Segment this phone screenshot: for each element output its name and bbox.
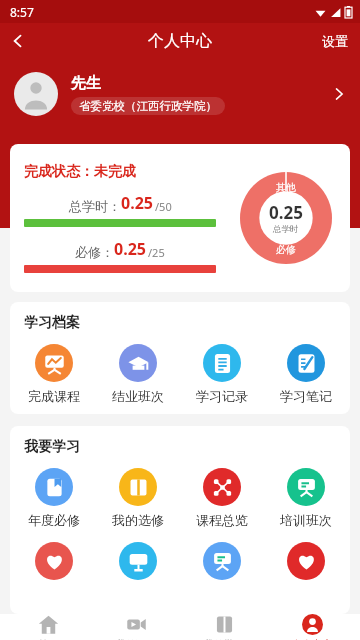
staticText: 设置 — [322, 33, 348, 49]
staticText: 我的学习 — [203, 638, 245, 640]
staticText: 年度必修 — [28, 512, 80, 528]
button[interactable] — [182, 542, 262, 604]
staticText: /50 — [155, 199, 172, 214]
button[interactable]: 课程总览 — [182, 468, 262, 528]
button[interactable]: 完成课程 — [14, 344, 94, 404]
staticText: 必修 — [276, 243, 296, 256]
staticText: 完成课程 — [28, 388, 80, 404]
staticText: 我的课程 — [115, 638, 157, 640]
button[interactable]: 设置 — [322, 33, 348, 49]
staticText: 个人中心 — [148, 31, 212, 51]
button[interactable]: 我的选修 — [98, 468, 178, 528]
staticText: 总学时 — [273, 224, 299, 235]
staticText: 学习记录 — [196, 388, 248, 404]
button[interactable]: 我的学习 — [184, 614, 264, 640]
staticText: 8:57 — [10, 4, 34, 20]
button[interactable] — [98, 542, 178, 604]
staticText: 0.25 — [114, 238, 146, 260]
button[interactable]: 学习记录 — [182, 344, 262, 404]
staticText: 0.25 — [121, 192, 153, 214]
staticText: 我的选修 — [112, 512, 164, 528]
staticText: 个人中心 — [291, 638, 333, 640]
staticText: 我要学习 — [24, 438, 80, 456]
staticText: 学习笔记 — [280, 388, 332, 404]
button[interactable]: 首页 — [8, 614, 88, 640]
staticText: 培训班次 — [280, 512, 332, 528]
button[interactable]: 我的课程 — [96, 614, 176, 640]
button[interactable] — [266, 542, 346, 604]
button[interactable]: 培训班次 — [266, 468, 346, 528]
staticText: 学习档案 — [24, 314, 80, 332]
staticText: /25 — [148, 245, 165, 260]
button[interactable]: 个人中心 — [272, 614, 352, 640]
staticText: 完成状态： — [24, 163, 94, 181]
staticText: 省委党校（江西行政学院） — [79, 99, 217, 113]
staticText: 结业班次 — [112, 388, 164, 404]
staticText: 未完成 — [94, 163, 136, 181]
staticText: 0.25 — [269, 201, 303, 224]
staticText: 课程总览 — [196, 512, 248, 528]
button[interactable]: 学习笔记 — [266, 344, 346, 404]
button[interactable]: Back — [0, 23, 36, 59]
staticText: 首页 — [38, 638, 59, 640]
button[interactable]: 先生 — [14, 59, 346, 129]
staticText: 必修： — [75, 244, 114, 260]
button[interactable] — [14, 542, 94, 604]
staticText: 其他 — [276, 181, 296, 194]
button[interactable]: 结业班次 — [98, 344, 178, 404]
button[interactable]: 年度必修 — [14, 468, 94, 528]
staticText: 先生 — [71, 74, 101, 93]
staticText: 总学时： — [69, 198, 121, 214]
